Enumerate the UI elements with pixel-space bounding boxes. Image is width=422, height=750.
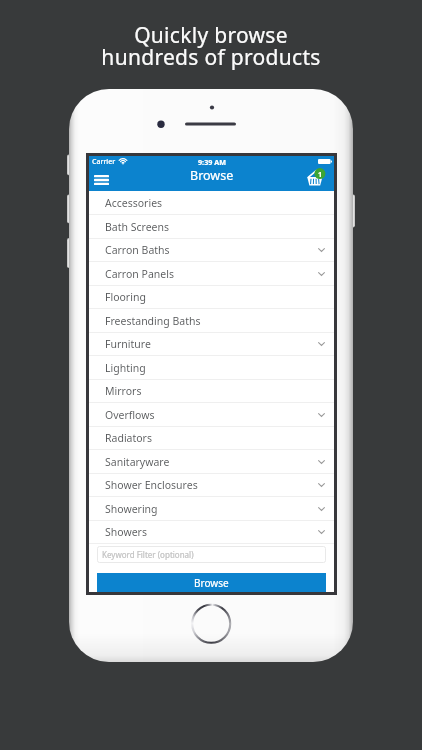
- staticText: Mirrors: [105, 384, 142, 398]
- button[interactable]: Showers: [89, 520, 334, 544]
- button[interactable]: Freestanding Baths: [89, 309, 334, 333]
- button[interactable]: Basket: [304, 166, 326, 191]
- button[interactable]: Accessories: [89, 191, 334, 215]
- staticText: Freestanding Baths: [105, 314, 201, 328]
- button[interactable]: Carron Panels: [89, 262, 334, 286]
- button[interactable]: Carron Baths: [89, 238, 334, 262]
- staticText: Accessories: [105, 196, 163, 210]
- button[interactable]: Bath Screens: [89, 215, 334, 239]
- staticText: Shower Enclosures: [105, 478, 198, 492]
- staticText: Showers: [105, 525, 147, 539]
- button[interactable]: Shower Enclosures: [89, 473, 334, 497]
- staticText: Bath Screens: [105, 220, 170, 234]
- button[interactable]: Menu: [90, 170, 112, 189]
- button[interactable]: Lighting: [89, 356, 334, 380]
- staticText: Carron Baths: [105, 243, 170, 257]
- staticText: Sanitaryware: [105, 455, 170, 469]
- staticText: 1: [318, 170, 323, 180]
- button[interactable]: Overflows: [89, 403, 334, 427]
- staticText: Showering: [105, 502, 158, 516]
- button[interactable]: Browse: [97, 573, 326, 592]
- staticText: Carrier: [92, 157, 116, 167]
- staticText: Keyword Filter (optional): [102, 549, 194, 560]
- staticText: Flooring: [105, 290, 146, 304]
- button[interactable]: Furniture: [89, 332, 334, 356]
- staticText: Overflows: [105, 408, 155, 422]
- button[interactable]: Flooring: [89, 285, 334, 309]
- button[interactable]: Keyword Filter (optional): [97, 546, 326, 563]
- button[interactable]: Radiators: [89, 426, 334, 450]
- staticText: Quickly browse hundreds of products: [101, 21, 321, 71]
- staticText: 9:39 AM: [198, 157, 226, 167]
- button[interactable]: Sanitaryware: [89, 450, 334, 474]
- staticText: Browse: [194, 576, 229, 590]
- staticText: Furniture: [105, 337, 151, 351]
- button[interactable]: Mirrors: [89, 379, 334, 403]
- staticText: Carron Panels: [105, 267, 174, 281]
- staticText: Radiators: [105, 431, 152, 445]
- staticText: Browse: [190, 167, 234, 184]
- staticText: Lighting: [105, 361, 146, 375]
- button[interactable]: Showering: [89, 497, 334, 521]
